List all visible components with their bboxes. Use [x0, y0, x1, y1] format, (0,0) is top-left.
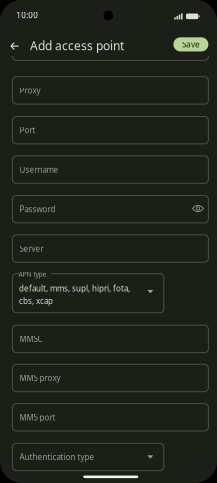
staticText: default, mms, supl, hipri, fota, — [19, 283, 130, 294]
button[interactable]: MMSC — [12, 325, 208, 353]
staticText: cbs, xcap — [19, 296, 53, 306]
staticText: 10:00 — [16, 10, 38, 20]
staticText: Port — [20, 125, 36, 135]
button[interactable]: Back — [5, 36, 25, 56]
staticText: Authentication type — [20, 452, 95, 462]
staticText: Save — [182, 39, 200, 50]
button[interactable]: Proxy — [12, 77, 208, 104]
button[interactable]: Username — [12, 156, 208, 183]
staticText: Proxy — [20, 85, 41, 96]
button[interactable]: Show password — [189, 199, 207, 217]
staticText: MMS port — [20, 412, 56, 423]
button[interactable]: Port — [12, 116, 208, 144]
staticText: Server — [20, 243, 44, 254]
button[interactable]: MMS port — [12, 404, 208, 431]
staticText: Username — [20, 164, 59, 175]
staticText: MMS proxy — [20, 373, 61, 383]
button[interactable]: MMS proxy — [12, 364, 208, 392]
button[interactable]: Save — [173, 37, 208, 51]
button[interactable]: Password — [12, 195, 208, 223]
button[interactable]: APN type — [12, 274, 164, 313]
staticText: MMSC — [20, 334, 43, 344]
staticText: APN type — [18, 270, 46, 279]
staticText: Add access point — [30, 38, 124, 54]
staticText: Password — [20, 204, 56, 214]
button[interactable]: Server — [12, 235, 208, 262]
button[interactable]: Authentication type — [12, 443, 164, 471]
